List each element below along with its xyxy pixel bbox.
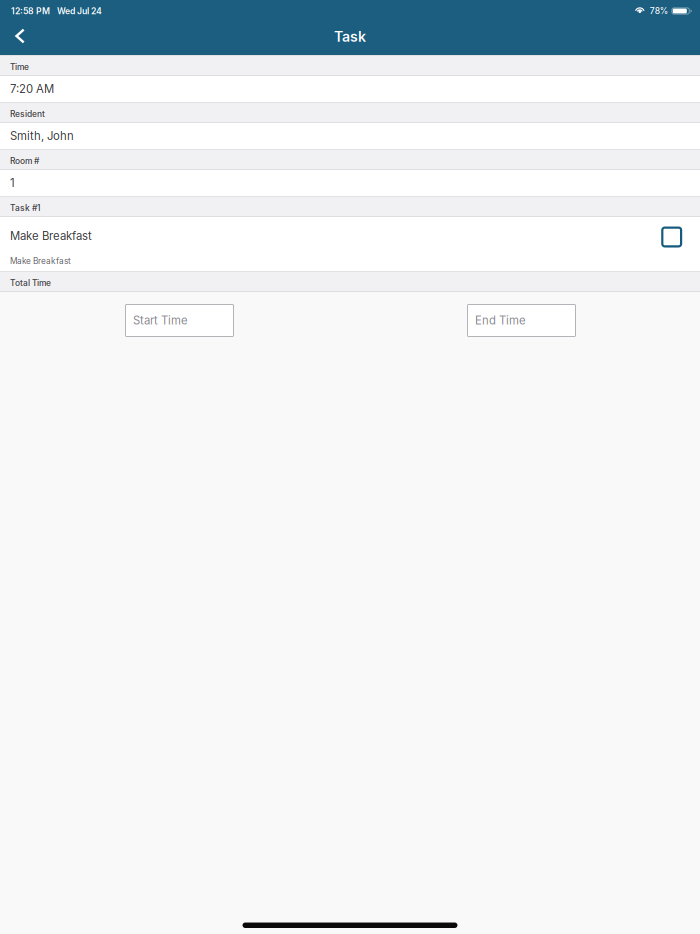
button[interactable]: Start Time [125,304,234,337]
staticText: Total Time [10,278,51,288]
staticText: Smith, John [10,129,74,143]
staticText: Task #1 [10,203,40,213]
staticText: Task [334,28,366,45]
staticText: 78% [650,6,668,16]
staticText: 7:20 AM [10,82,54,96]
staticText: Time [10,62,29,72]
staticText: End Time [475,314,526,327]
staticText: Make Breakfast [10,229,92,243]
button[interactable]: 1 [0,170,700,196]
button[interactable]: Back [0,22,40,55]
staticText: Wed Jul 24 [57,6,102,16]
staticText: Resident [10,109,45,119]
staticText: Start Time [133,314,188,327]
staticText: Make Breakfast [10,256,71,266]
staticText: 1 [10,176,15,190]
button[interactable]: End Time [467,304,576,337]
button[interactable]: Smith, John [0,123,700,149]
staticText: 12:58 PM [11,6,50,16]
button[interactable]: 7:20 AM [0,76,700,102]
button[interactable]: Mark task complete [661,226,682,247]
staticText: Room # [10,156,39,166]
